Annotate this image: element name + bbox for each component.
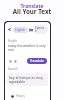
button[interactable]: hoy el tiempo es muy agradable <box>7 73 48 86</box>
staticText: English <box>15 28 26 32</box>
staticText: All Your Text <box>0 7 64 15</box>
button[interactable]: Spanish <box>33 25 48 34</box>
button[interactable]: Translate <box>27 58 47 64</box>
staticText: hoy el tiempo es muy agradable <box>9 75 46 84</box>
staticText: Translate <box>30 59 44 63</box>
button[interactable]: Swap languages <box>28 27 33 32</box>
button[interactable]: English <box>13 27 28 33</box>
staticText: Spanish <box>35 26 46 33</box>
button[interactable]: Back <box>7 27 12 32</box>
staticText: Translate <box>0 3 64 10</box>
staticText: today the weather is very nice <box>8 44 47 52</box>
button[interactable]: Microphone <box>8 59 12 63</box>
staticText: English <box>8 39 17 43</box>
staticText: Spanish <box>8 67 18 71</box>
staticText: History <box>16 94 25 98</box>
button[interactable]: Camera <box>13 59 17 63</box>
